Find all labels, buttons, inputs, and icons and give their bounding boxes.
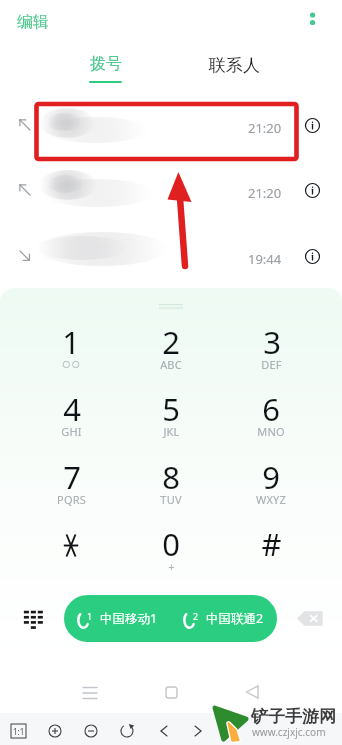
staticText: # [261, 523, 282, 565]
staticText: + [168, 559, 175, 574]
button[interactable]: 1 [39, 321, 103, 379]
button[interactable]: 21:20 [0, 92, 342, 158]
staticText: 拨号 [90, 54, 122, 74]
button[interactable]: 编辑 [10, 8, 56, 36]
button[interactable]: Keypad [21, 605, 45, 629]
button[interactable]: 9 [239, 456, 303, 514]
button[interactable]: 1 [64, 595, 170, 642]
button[interactable]: 联系人 [196, 55, 272, 83]
staticText: 2 [162, 321, 180, 363]
button[interactable]: 5 [139, 388, 203, 446]
staticText: PQRS [57, 492, 86, 507]
button[interactable]: Call details [302, 115, 323, 136]
staticText: 1 [62, 321, 80, 363]
button[interactable]: 8 [139, 456, 203, 514]
button[interactable]: Next [187, 720, 209, 742]
staticText: 中国联通2 [206, 610, 264, 627]
button[interactable]: 21:20 [0, 157, 342, 223]
staticText: 1 [87, 610, 93, 622]
staticText: 中国移动1 [100, 610, 158, 627]
staticText: 1:1 [13, 726, 25, 737]
button[interactable]: Actual size [11, 724, 26, 738]
staticText: MNO [257, 424, 285, 439]
button[interactable]: Previous [153, 720, 175, 742]
staticText: 8 [162, 456, 180, 498]
button[interactable]: Back [241, 681, 263, 703]
button[interactable]: More options [300, 3, 325, 28]
button[interactable]: # [239, 523, 303, 581]
staticText: 7 [63, 456, 81, 498]
button[interactable]: Zoom out [80, 720, 102, 742]
button[interactable]: 2 [170, 595, 277, 642]
button[interactable]: 0 [139, 523, 203, 581]
staticText: 联系人 [209, 55, 260, 76]
button[interactable]: 19:44 [0, 223, 342, 289]
staticText: GHI [61, 424, 82, 439]
staticText: 5 [162, 388, 180, 430]
button[interactable]: 拨号 [74, 54, 136, 96]
staticText: 铲子手游网 [251, 706, 336, 727]
staticText: www.czjxjc.com [252, 725, 326, 739]
staticText: 3 [263, 321, 281, 363]
button[interactable]: Call details [302, 180, 323, 201]
staticText: 编辑 [17, 12, 49, 32]
staticText: TUV [160, 492, 182, 507]
staticText: DEF [261, 357, 282, 372]
button[interactable]: 7 [39, 456, 103, 514]
button[interactable]: Delete [296, 608, 324, 629]
button[interactable]: Recent apps [79, 682, 101, 704]
button[interactable]: Home [161, 682, 183, 704]
staticText: WXYZ [256, 492, 286, 507]
button[interactable]: Rotate [116, 720, 138, 742]
staticText: 21:20 [248, 119, 282, 137]
staticText: 9 [262, 456, 280, 498]
staticText: 2 [193, 610, 199, 622]
staticText: 4 [63, 388, 81, 430]
button[interactable]: 3 [239, 321, 303, 379]
button[interactable]: Zoom in [44, 720, 66, 742]
staticText: JKL [163, 424, 180, 439]
staticText: ABC [160, 357, 182, 372]
staticText: 6 [262, 388, 280, 430]
button[interactable]: 6 [239, 388, 303, 446]
button[interactable] [39, 523, 103, 581]
staticText: 21:20 [248, 184, 282, 202]
button[interactable]: 4 [39, 388, 103, 446]
staticText: 0 [162, 523, 180, 565]
staticText: 19:44 [248, 250, 282, 268]
button[interactable]: Call details [302, 246, 323, 267]
button[interactable]: 2 [139, 321, 203, 379]
